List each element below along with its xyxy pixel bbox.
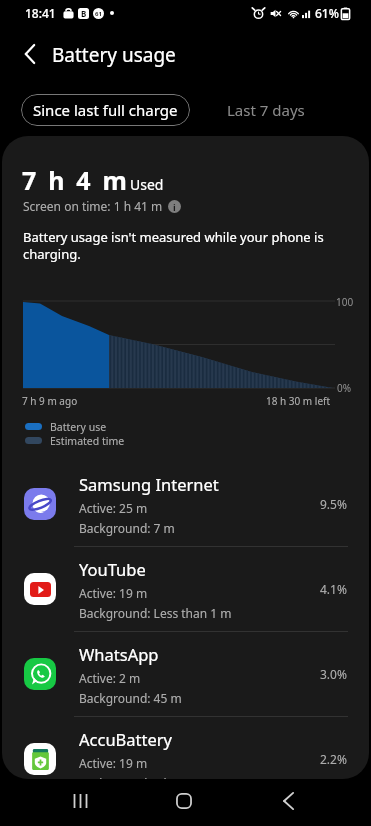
staticText: 61% bbox=[315, 5, 339, 21]
staticText: Samsung Internet bbox=[79, 473, 219, 495]
staticText: 9.5% bbox=[320, 496, 347, 512]
button[interactable]: Last 7 days bbox=[218, 94, 314, 126]
staticText: Background: 7 m bbox=[79, 520, 175, 536]
staticText: Battery usage bbox=[52, 42, 176, 68]
staticText: Last 7 days bbox=[227, 100, 305, 120]
staticText: 0% bbox=[337, 381, 352, 395]
staticText: 3.0% bbox=[320, 666, 347, 682]
staticText: Background: 45 m bbox=[79, 690, 182, 706]
staticText: Battery usage isn't measured while your … bbox=[23, 228, 324, 263]
staticText: i bbox=[173, 201, 176, 213]
staticText: 61 bbox=[95, 10, 102, 18]
staticText: Estimated time bbox=[50, 434, 125, 448]
staticText: 18 h 30 m left bbox=[266, 394, 331, 408]
staticText: YouTube bbox=[79, 558, 146, 580]
staticText: 18:41 bbox=[25, 5, 56, 21]
staticText: Screen on time: 1 h 41 m bbox=[23, 198, 163, 214]
button[interactable]: Recents bbox=[56, 785, 104, 826]
button[interactable]: More information bbox=[168, 200, 181, 213]
button[interactable]: WhatsApp bbox=[2, 632, 369, 716]
staticText: 100 bbox=[336, 295, 354, 309]
staticText: Used bbox=[130, 175, 164, 194]
staticText: AccuBattery bbox=[79, 728, 173, 750]
staticText: Background: Less than 1 m bbox=[79, 605, 232, 621]
button[interactable]: Samsung Internet bbox=[2, 462, 369, 546]
staticText: WhatsApp bbox=[79, 643, 159, 665]
staticText: Active: 19 m bbox=[79, 585, 148, 601]
staticText: 4.1% bbox=[320, 581, 347, 597]
button[interactable]: Back bbox=[264, 785, 312, 826]
button[interactable]: Home bbox=[160, 785, 208, 826]
button[interactable]: YouTube bbox=[2, 547, 369, 631]
staticText: Active: 19 m bbox=[79, 755, 148, 771]
staticText: Active: 2 m bbox=[79, 670, 141, 686]
button[interactable]: Since last full charge bbox=[21, 94, 190, 126]
staticText: 7 h 4 m bbox=[22, 163, 130, 197]
staticText: 2.2% bbox=[320, 751, 347, 767]
button[interactable]: Navigate up bbox=[12, 36, 48, 72]
staticText: 7 h 9 m ago bbox=[22, 394, 78, 408]
staticText: Active: 25 m bbox=[79, 500, 148, 516]
button[interactable]: AccuBattery bbox=[2, 717, 369, 779]
staticText: Background: 1 h 48 m bbox=[79, 775, 203, 779]
staticText: B bbox=[81, 8, 87, 19]
staticText: Battery use bbox=[50, 420, 107, 434]
staticText: Since last full charge bbox=[33, 100, 178, 120]
